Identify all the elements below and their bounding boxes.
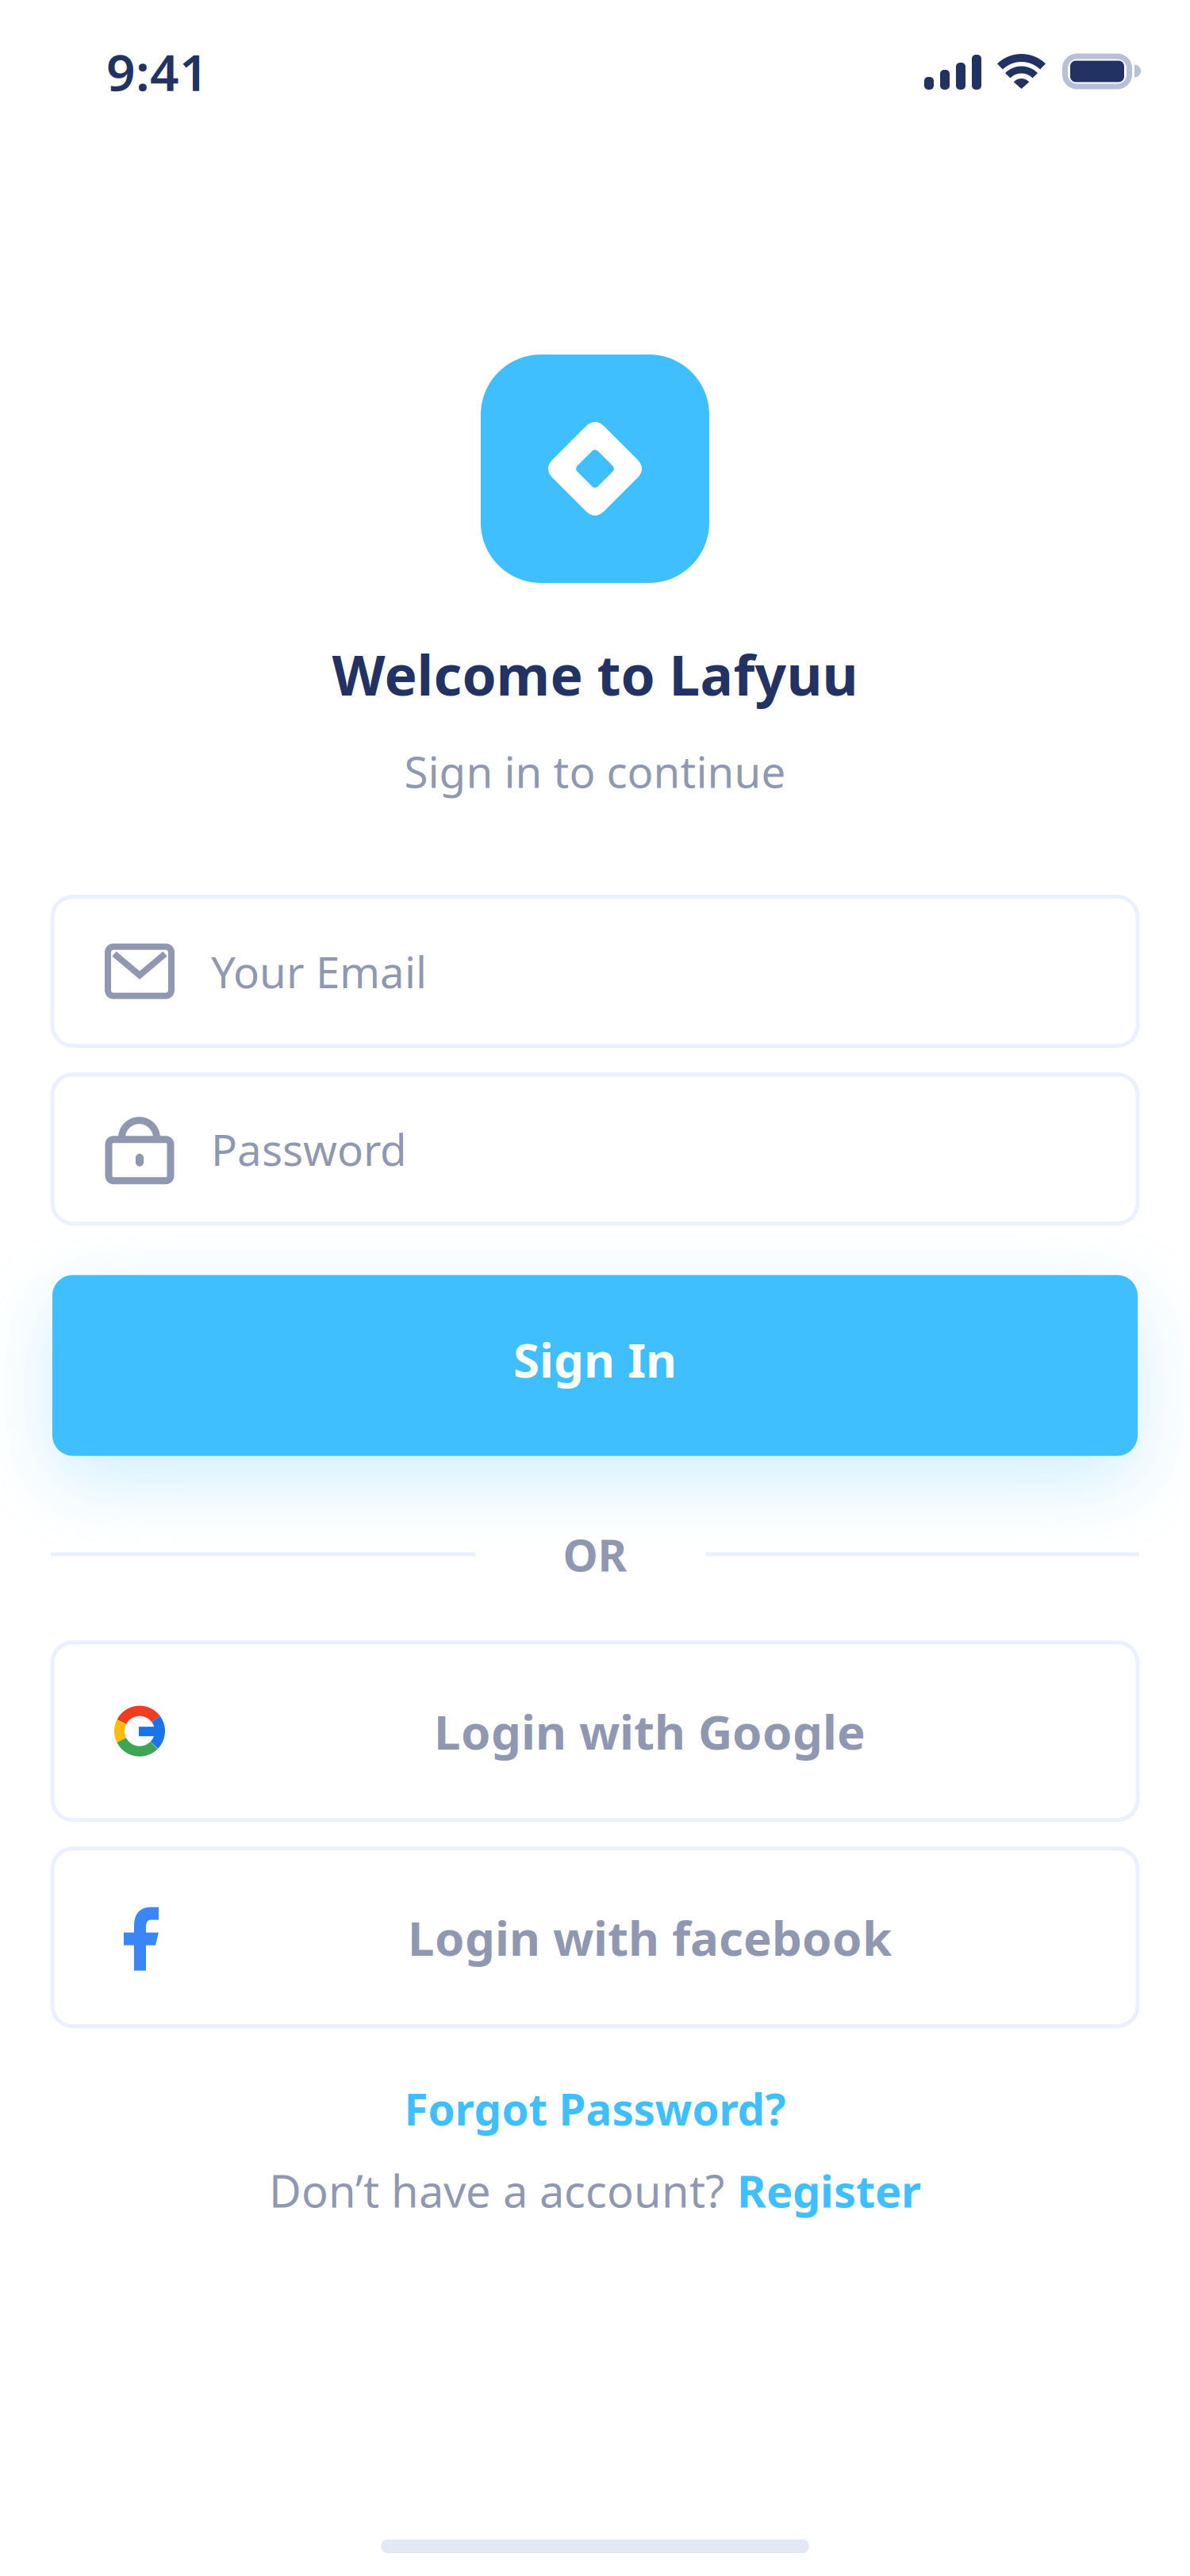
- staticText: Login with Google: [434, 1699, 866, 1763]
- staticText: Sign in to continue: [404, 742, 786, 800]
- button[interactable]: Password: [52, 1074, 1138, 1224]
- button[interactable]: Login with facebook: [52, 1848, 1138, 2026]
- staticText: 9:41: [106, 38, 209, 105]
- staticText: Don’t have a account?: [269, 2161, 724, 2220]
- button[interactable]: Your Email: [52, 897, 1138, 1046]
- staticText: Your Email: [211, 943, 427, 1000]
- staticText: OR: [563, 1525, 627, 1584]
- staticText: Password: [211, 1120, 407, 1178]
- staticText: Welcome to Lafyuu: [332, 638, 858, 711]
- button[interactable]: Login with Google: [52, 1642, 1138, 1820]
- staticText: Login with facebook: [408, 1906, 892, 1969]
- button[interactable]: Forgot Password?: [404, 2084, 786, 2133]
- button[interactable]: Sign In: [52, 1275, 1138, 1456]
- staticText: Register: [737, 2161, 921, 2220]
- button[interactable]: Register: [737, 2161, 921, 2220]
- staticText: Forgot Password?: [404, 2080, 786, 2137]
- staticText: Sign In: [513, 1327, 677, 1391]
